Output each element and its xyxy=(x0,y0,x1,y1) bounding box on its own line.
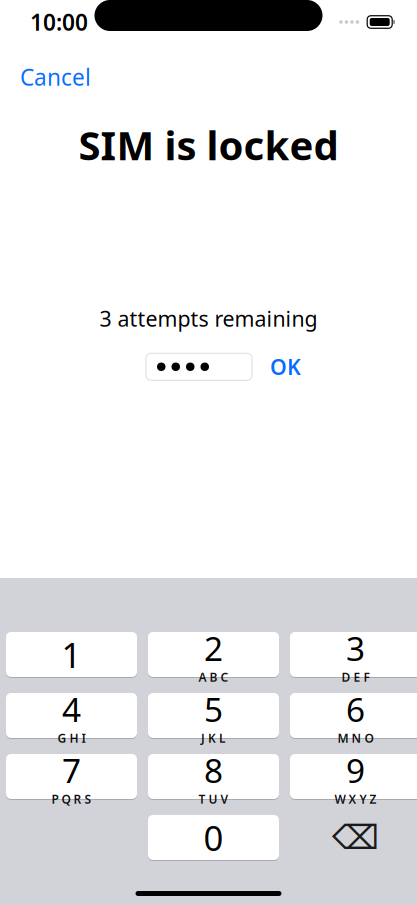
staticText: D E F xyxy=(341,669,369,685)
button[interactable]: 9 xyxy=(290,753,417,800)
button[interactable]: 3 xyxy=(290,631,417,678)
staticText: 0 xyxy=(203,814,223,860)
button[interactable]: 4 xyxy=(6,692,137,739)
staticText: Cancel xyxy=(20,62,91,92)
staticText: T U V xyxy=(198,791,228,807)
staticText: SIM is locked xyxy=(78,118,338,171)
staticText: 9 xyxy=(346,748,365,792)
button[interactable]: OK xyxy=(266,349,305,385)
button[interactable]: 6 xyxy=(290,692,417,739)
staticText: 5 xyxy=(204,687,223,731)
staticText: 3 attempts remaining xyxy=(99,304,317,333)
staticText: P Q R S xyxy=(51,791,91,807)
button[interactable]: 7 xyxy=(6,753,137,800)
staticText: A B C xyxy=(198,669,228,685)
staticText: 8 xyxy=(204,748,223,792)
staticText: ⌫ xyxy=(332,819,379,856)
staticText: J K L xyxy=(201,730,226,746)
button[interactable]: Delete xyxy=(290,814,417,861)
staticText: 10:00 xyxy=(30,7,88,37)
staticText: G H I xyxy=(57,730,85,746)
staticText: 3 xyxy=(346,626,365,670)
staticText: 6 xyxy=(346,687,365,731)
staticText: 4 xyxy=(62,687,81,731)
button[interactable]: 2 xyxy=(148,631,279,678)
button[interactable]: Cancel xyxy=(16,56,95,98)
button[interactable]: 8 xyxy=(148,753,279,800)
staticText: OK xyxy=(270,353,301,381)
staticText: 1 xyxy=(61,631,81,677)
staticText: M N O xyxy=(337,730,373,746)
staticText: 7 xyxy=(62,748,81,792)
button[interactable]: 0 xyxy=(148,814,279,861)
button[interactable]: 5 xyxy=(148,692,279,739)
button[interactable]: 1 xyxy=(6,631,137,678)
staticText: W X Y Z xyxy=(334,791,376,807)
staticText: 2 xyxy=(204,626,223,670)
